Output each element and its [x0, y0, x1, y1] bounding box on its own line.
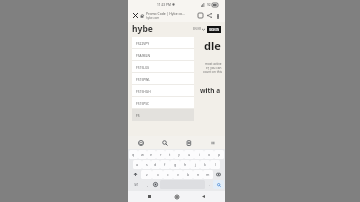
- button[interactable]: t: [165, 150, 174, 159]
- staticText: d: [154, 162, 157, 167]
- staticText: t: [169, 152, 171, 157]
- button[interactable]: v: [173, 170, 183, 179]
- button[interactable]: Recent apps: [144, 191, 155, 202]
- button[interactable]: ,: [143, 180, 151, 189]
- button[interactable]: Search: [213, 180, 224, 189]
- button[interactable]: k: [200, 160, 210, 169]
- staticText: x: [157, 172, 159, 177]
- staticText: l: [215, 162, 216, 167]
- button[interactable]: r: [156, 150, 165, 159]
- staticText: with a: [200, 86, 221, 95]
- button[interactable]: FS: [132, 109, 194, 121]
- staticText: Promo Code | Hybe co…: [146, 11, 185, 16]
- staticText: count on this: [203, 70, 222, 74]
- staticText: 11:23 PM: [157, 3, 171, 7]
- button[interactable]: c: [163, 170, 173, 179]
- staticText: u: [188, 152, 191, 157]
- staticText: m: [206, 172, 210, 177]
- button[interactable]: Shift: [129, 170, 141, 179]
- button[interactable]: Voice input: [151, 180, 160, 189]
- button[interactable]: l: [210, 160, 220, 169]
- button[interactable]: Home: [171, 191, 182, 202]
- button[interactable]: Share: [205, 11, 214, 20]
- staticText: FS15LGS: [136, 65, 150, 69]
- staticText: e: [150, 152, 153, 157]
- button[interactable]: e: [147, 150, 156, 159]
- button[interactable]: x: [152, 170, 163, 179]
- staticText: r: [160, 152, 162, 157]
- button[interactable]: a: [133, 160, 142, 169]
- button[interactable]: q: [129, 150, 138, 159]
- staticText: hybe: [132, 23, 153, 35]
- staticText: .: [209, 182, 210, 187]
- button[interactable]: Promo Code | Hybe co…: [140, 11, 196, 20]
- button[interactable]: g: [170, 160, 180, 169]
- button[interactable]: n: [193, 170, 203, 179]
- button[interactable]: b: [183, 170, 193, 179]
- staticText: k: [204, 162, 206, 167]
- staticText: i: [199, 152, 200, 157]
- staticText: y: [178, 152, 180, 157]
- staticText: er, you can: [206, 66, 222, 70]
- button[interactable]: FS15HGH: [132, 85, 194, 97]
- button[interactable]: o: [204, 150, 214, 159]
- button[interactable]: Back: [198, 191, 209, 202]
- staticText: hybe.com: [146, 16, 160, 20]
- button[interactable]: More keyboard options: [201, 136, 225, 149]
- button[interactable]: j: [190, 160, 200, 169]
- button[interactable]: Close tab: [131, 11, 140, 20]
- staticText: p: [218, 152, 221, 157]
- staticText: o: [208, 152, 211, 157]
- button[interactable]: FS15PWL: [132, 73, 194, 85]
- button[interactable]: i: [194, 150, 204, 159]
- staticText: w: [141, 152, 144, 157]
- staticText: g: [174, 162, 177, 167]
- staticText: v: [177, 172, 179, 177]
- staticText: ,: [147, 182, 148, 187]
- button[interactable]: Search key: [153, 136, 177, 149]
- button[interactable]: FSA9BLN: [132, 49, 194, 61]
- staticText: FS15PWL: [136, 77, 151, 81]
- staticText: s: [146, 162, 148, 167]
- button[interactable]: More options: [214, 12, 222, 20]
- staticText: q: [132, 152, 135, 157]
- staticText: FS22VPY: [136, 41, 150, 45]
- staticText: c: [167, 172, 169, 177]
- staticText: b: [187, 172, 190, 177]
- button[interactable]: s: [142, 160, 151, 169]
- staticText: !#1: [134, 183, 139, 187]
- staticText: dle: [204, 38, 221, 53]
- button[interactable]: SIGN IN: [207, 26, 221, 33]
- button[interactable]: w: [138, 150, 147, 159]
- staticText: f: [164, 162, 166, 167]
- button[interactable]: y: [174, 150, 184, 159]
- staticText: h: [184, 162, 187, 167]
- staticText: EN KR: [193, 27, 201, 31]
- button[interactable]: d: [151, 160, 160, 169]
- button[interactable]: !#1: [129, 180, 143, 189]
- button[interactable]: p: [214, 150, 224, 159]
- staticText: j: [195, 162, 196, 167]
- staticText: z: [146, 172, 148, 177]
- button[interactable]: FS22VPY: [132, 37, 194, 49]
- staticText: FS15HGH: [136, 89, 151, 93]
- button[interactable]: Tabs: [196, 11, 205, 20]
- staticText: n: [197, 172, 200, 177]
- button[interactable]: u: [184, 150, 194, 159]
- staticText: 92: [207, 3, 211, 7]
- staticText: a: [136, 162, 139, 167]
- button[interactable]: FS15PSC: [132, 97, 194, 109]
- button[interactable]: FS15LGS: [132, 61, 194, 73]
- button[interactable]: z: [141, 170, 152, 179]
- button[interactable]: h: [180, 160, 190, 169]
- staticText: most active: [205, 62, 222, 66]
- staticText: SIGN IN: [209, 28, 220, 32]
- button[interactable]: Emoji: [128, 136, 153, 149]
- button[interactable]: m: [203, 170, 213, 179]
- staticText: FS: [136, 113, 140, 117]
- button[interactable]: Backspace: [213, 170, 224, 179]
- button[interactable]: f: [160, 160, 170, 169]
- button[interactable]: Clipboard: [177, 136, 201, 149]
